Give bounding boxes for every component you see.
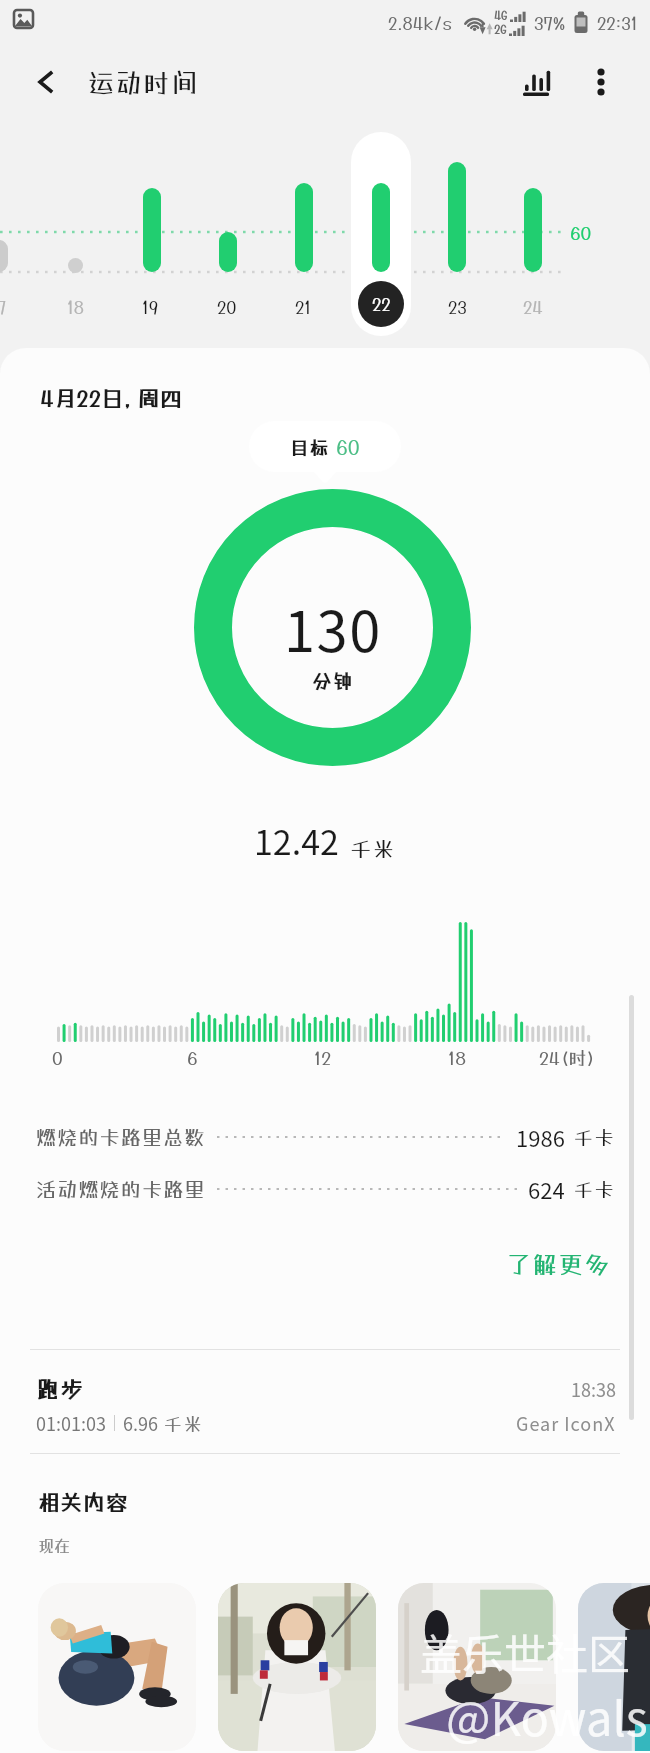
staticText: 60 <box>570 222 592 243</box>
button[interactable]: 活动燃烧的卡路里 <box>36 1173 616 1205</box>
button[interactable]: Back <box>18 54 74 110</box>
staticText: 20 <box>217 297 237 317</box>
staticText: 千米 <box>164 1413 203 1434</box>
staticText: 22:31 <box>597 13 638 33</box>
staticText: 19 <box>142 297 159 317</box>
staticText: 4G <box>494 9 508 22</box>
button[interactable]: More options <box>573 54 629 110</box>
button[interactable]: Related content <box>578 1583 650 1751</box>
staticText: 624 <box>528 1173 565 1205</box>
staticText: 燃烧的卡路里总数 <box>36 1125 206 1149</box>
staticText: 6 <box>187 1047 198 1068</box>
staticText: 23 <box>448 297 467 317</box>
staticText: 17 <box>0 297 7 317</box>
button[interactable]: Related content <box>218 1583 376 1751</box>
staticText: 18 <box>67 297 84 317</box>
staticText: 12 <box>314 1047 331 1068</box>
staticText: 了解更多 <box>507 1250 611 1278</box>
staticText: 01:01:03 <box>36 1410 106 1436</box>
button[interactable]: Related content <box>38 1583 196 1751</box>
staticText: 千卡 <box>574 1178 616 1200</box>
staticText: 2G <box>494 23 507 36</box>
staticText: 目标 <box>290 437 329 458</box>
button[interactable] <box>351 132 411 336</box>
staticText: 12.42 <box>254 816 339 865</box>
button[interactable]: 跑步 <box>0 1354 650 1458</box>
staticText: 盖乐世社区 <box>420 1621 631 1682</box>
staticText: 18 <box>448 1047 466 1068</box>
staticText: 24(时) <box>539 1047 596 1068</box>
staticText: 活动燃烧的卡路里 <box>36 1177 206 1201</box>
button[interactable]: Statistics <box>509 54 565 110</box>
staticText: 130 <box>284 587 382 668</box>
staticText: 运动时间 <box>88 67 200 98</box>
button[interactable]: 目标 <box>249 421 401 472</box>
staticText: 现在 <box>38 1536 71 1555</box>
staticText: 千米 <box>350 836 396 861</box>
staticText: 22 <box>372 294 391 314</box>
staticText: 37% <box>534 13 566 33</box>
staticText: 跑步 <box>36 1376 85 1402</box>
button[interactable]: 燃烧的卡路里总数 <box>36 1121 616 1153</box>
staticText: 18:38 <box>571 1376 616 1402</box>
staticText: 0 <box>52 1047 63 1068</box>
staticText: 4月22日, 周四 <box>40 386 183 411</box>
staticText: @Kowalski <box>446 1681 650 1749</box>
staticText: 60 <box>336 435 360 459</box>
staticText: 千卡 <box>574 1126 616 1148</box>
staticText: 21 <box>295 297 312 317</box>
staticText: 6.96 <box>123 1410 158 1436</box>
staticText: 2.84k/s <box>388 13 452 33</box>
button[interactable]: 了解更多 <box>501 1244 617 1284</box>
staticText: 相关内容 <box>38 1490 128 1515</box>
button[interactable]: Related content <box>398 1583 556 1751</box>
staticText: 分钟 <box>312 670 355 692</box>
staticText: 24 <box>523 297 543 317</box>
staticText: 1986 <box>516 1121 565 1153</box>
staticText: Gear IconX <box>516 1410 616 1436</box>
